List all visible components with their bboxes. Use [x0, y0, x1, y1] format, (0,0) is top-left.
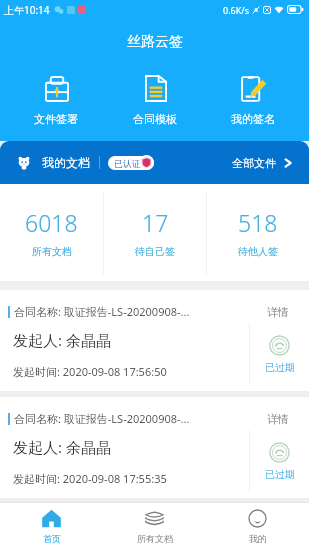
button[interactable]: 我的签名 — [210, 64, 296, 134]
button[interactable]: 合同名称: 取证报告-LS-20200908-... — [0, 290, 309, 391]
staticText: 所有文档 — [137, 533, 173, 544]
staticText: 发起人: 余晶晶 — [13, 437, 111, 457]
staticText: 6018 — [25, 207, 78, 238]
button[interactable]: 合同名称: 取证报告-LS-20200908-... — [0, 397, 309, 498]
button[interactable]: 6018 — [0, 184, 103, 281]
button[interactable]: 全部文件 — [232, 156, 294, 170]
staticText: 首页 — [43, 533, 61, 544]
staticText: 合同模板 — [133, 112, 177, 126]
staticText: 待他人签 — [238, 245, 278, 258]
staticText: 全部文件 — [232, 156, 276, 170]
staticText: 我的 — [249, 533, 267, 544]
button[interactable]: 我的 — [206, 503, 309, 550]
staticText: 0.6K/s — [223, 4, 249, 16]
staticText: 合同名称: 取证报告-LS-20200908-... — [14, 411, 261, 426]
staticText: 我的签名 — [231, 112, 275, 126]
staticText: 17 — [142, 207, 169, 238]
staticText: 合同名称: 取证报告-LS-20200908-... — [14, 304, 261, 319]
staticText: 我的文档 — [42, 155, 90, 170]
button[interactable]: 首页 — [0, 503, 103, 550]
staticText: 详情 — [267, 412, 289, 426]
staticText: 上午10:14 — [4, 3, 50, 17]
button[interactable]: 17 — [104, 184, 206, 281]
button[interactable]: 文件签署 — [13, 64, 99, 134]
staticText: 待自己签 — [135, 245, 175, 258]
staticText: 发起人: 余晶晶 — [13, 330, 111, 350]
button[interactable]: 合同模板 — [112, 64, 198, 134]
staticText: 发起时间: 2020-09-08 17:56:50 — [13, 364, 167, 379]
staticText: 所有文档 — [32, 245, 72, 258]
staticText: 已过期 — [265, 361, 295, 374]
staticText: 518 — [238, 207, 278, 238]
staticText: 已认证 — [114, 158, 141, 169]
button[interactable]: 518 — [207, 184, 309, 281]
staticText: 发起时间: 2020-09-08 17:55:35 — [13, 471, 167, 486]
staticText: 文件签署 — [34, 112, 78, 126]
button[interactable]: 所有文档 — [103, 503, 206, 550]
staticText: 详情 — [267, 305, 289, 319]
staticText: 已过期 — [265, 468, 295, 481]
staticText: 丝路云签 — [127, 33, 183, 51]
